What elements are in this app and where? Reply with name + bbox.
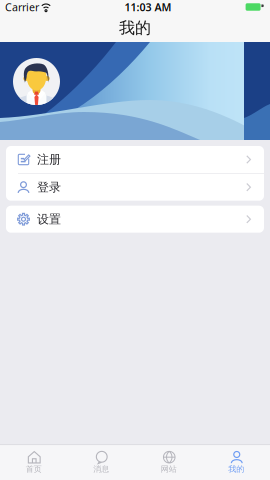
staticText: Carrier [5,0,39,14]
staticText: 设置 [37,212,61,226]
button[interactable]: 登录 [6,174,264,201]
button[interactable]: 消息 [67,445,135,480]
staticText: 首页 [26,464,42,474]
staticText: 网站 [161,464,177,474]
button[interactable]: 我的 [202,445,270,480]
staticText: 11:03 AM [124,0,171,14]
staticText: 登录 [37,180,61,194]
button[interactable]: 设置 [6,206,264,233]
button[interactable]: 网站 [135,445,202,480]
button[interactable]: 首页 [0,445,67,480]
button[interactable]: 注册 [6,146,264,173]
staticText: 注册 [37,152,61,167]
staticText: 我的 [228,464,244,474]
staticText: 我的 [119,18,151,38]
staticText: 消息 [93,464,109,474]
